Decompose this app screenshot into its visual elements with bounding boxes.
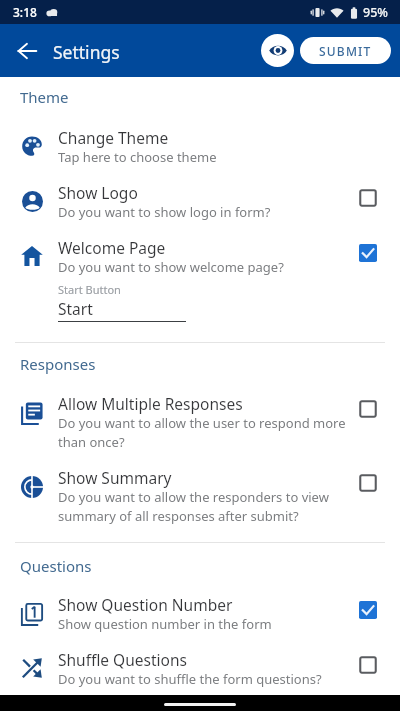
button[interactable]: Welcome Page	[0, 237, 400, 276]
staticText: Start	[58, 298, 93, 319]
button[interactable]: Show Logo	[0, 182, 400, 221]
button[interactable]: Toggle	[359, 189, 377, 207]
staticText: Settings	[53, 40, 120, 64]
button[interactable]: Back	[3, 27, 51, 75]
staticText: Theme	[20, 87, 69, 107]
staticText: Do you want to show welcome page?	[58, 258, 284, 276]
button[interactable]: Toggle	[359, 400, 377, 418]
staticText: Do you want to allow the user to respond…	[58, 414, 349, 451]
button[interactable]: Toggle	[359, 474, 377, 492]
staticText: Do you want to show logo in form?	[58, 203, 271, 221]
staticText: Tap here to choose theme	[58, 148, 217, 166]
staticText: Questions	[20, 556, 92, 576]
button[interactable]: Show Summary	[0, 467, 400, 525]
button[interactable]: Allow Multiple Responses	[0, 393, 400, 451]
staticText: Do you want to allow the responders to v…	[58, 488, 349, 525]
staticText: 3:18	[13, 4, 37, 20]
button[interactable]: Toggle	[359, 601, 377, 619]
button[interactable]: Change Theme	[0, 127, 400, 166]
button[interactable]: SUBMIT	[300, 37, 391, 64]
staticText: Welcome Page	[58, 237, 166, 258]
staticText: Shuffle Questions	[58, 649, 187, 670]
button[interactable]: Preview	[261, 34, 294, 67]
staticText: Change Theme	[58, 127, 169, 148]
button[interactable]: Toggle	[359, 656, 377, 674]
staticText: Show Question Number	[58, 594, 233, 615]
staticText: Show Logo	[58, 182, 138, 203]
button[interactable]: Show Question Number	[0, 594, 400, 633]
button[interactable]: Toggle	[359, 244, 377, 262]
button[interactable]: Shuffle Questions	[0, 649, 400, 688]
staticText: Show question number in the form	[58, 615, 272, 633]
staticText: Responses	[20, 354, 96, 374]
staticText: SUBMIT	[319, 43, 372, 59]
staticText: Start Button	[58, 282, 121, 297]
staticText: Allow Multiple Responses	[58, 393, 243, 414]
staticText: Show Summary	[58, 467, 172, 488]
staticText: Do you want to shuffle the form question…	[58, 670, 322, 688]
staticText: 95%	[363, 4, 388, 21]
